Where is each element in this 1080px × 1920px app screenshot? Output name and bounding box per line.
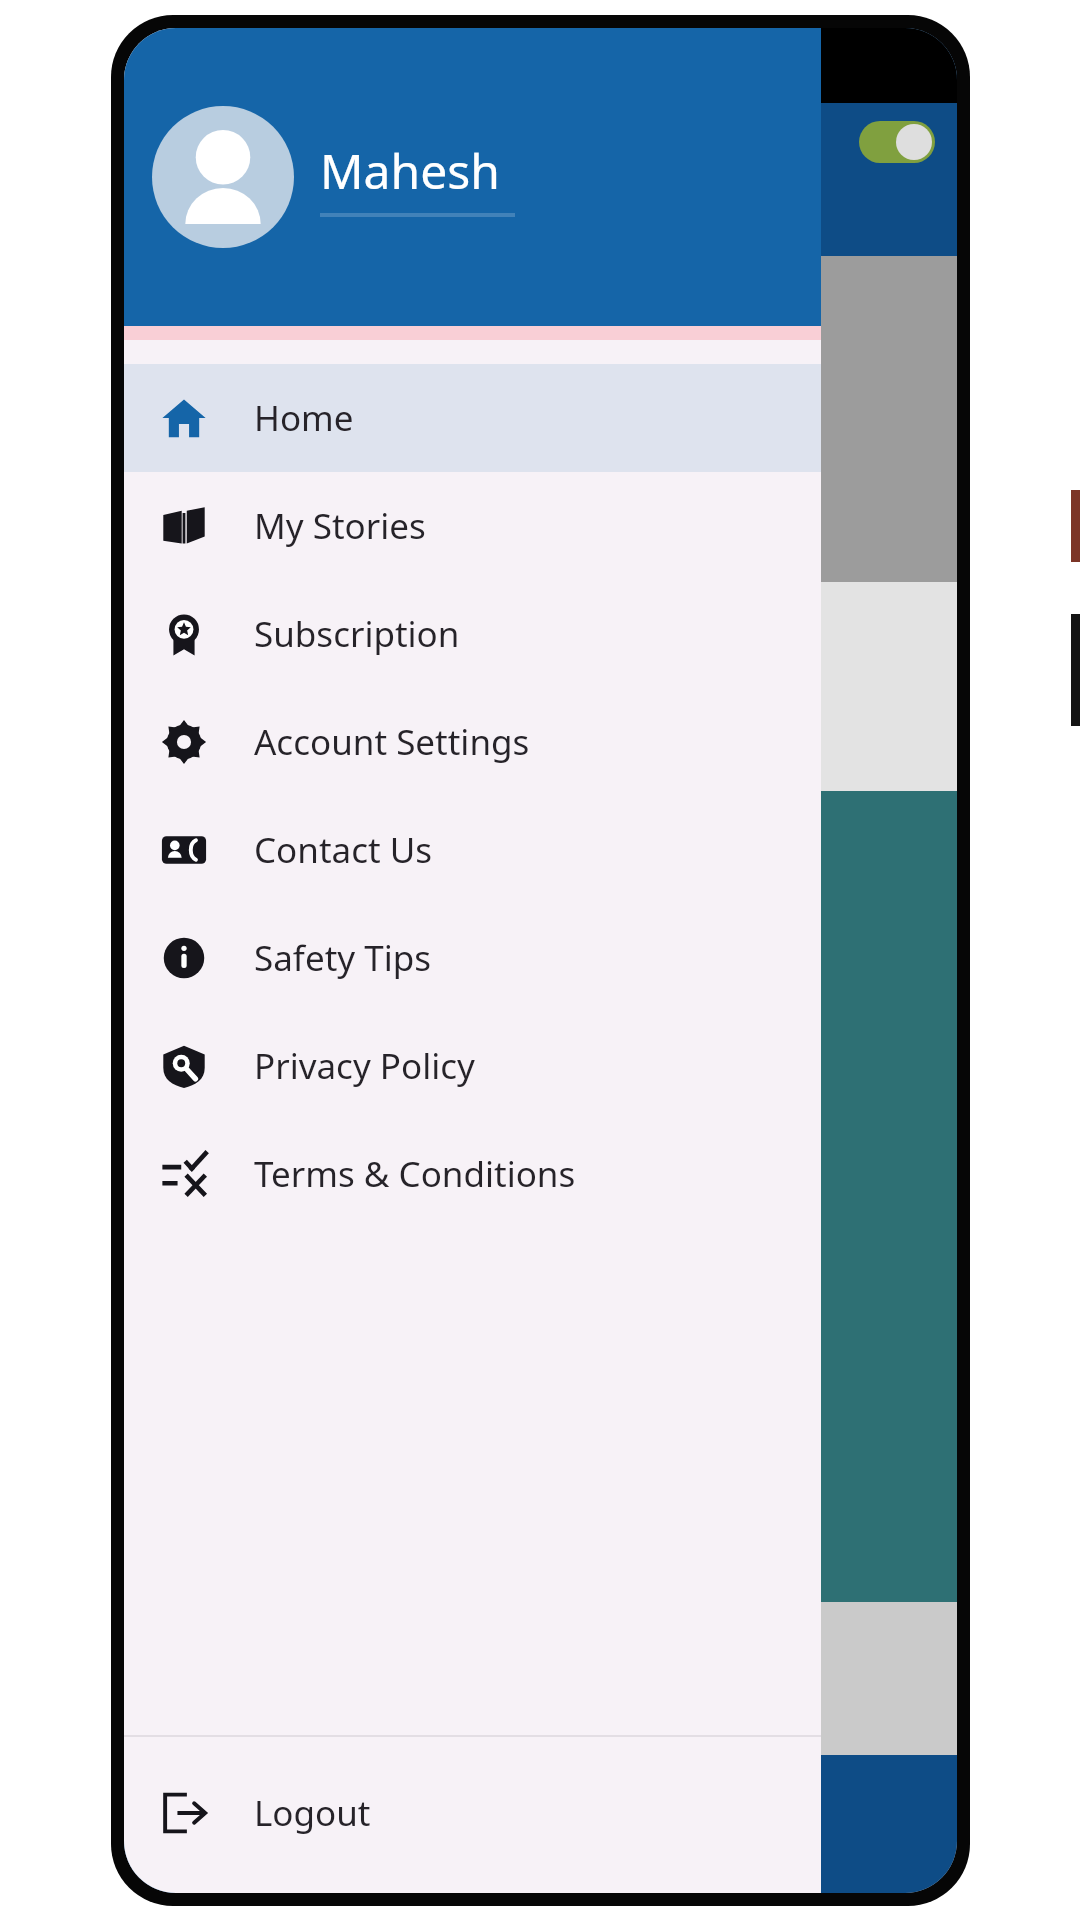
button[interactable]: Subscription (124, 580, 821, 688)
staticText: Logout (254, 1789, 371, 1837)
staticText: Safety Tips (254, 934, 431, 982)
button[interactable]: My Stories (124, 472, 821, 580)
staticText: Terms & Conditions (254, 1150, 576, 1198)
button[interactable]: Toggle (859, 121, 935, 163)
button[interactable]: Home (124, 364, 821, 472)
staticText: Account Settings (254, 718, 530, 766)
staticText: Mahesh (320, 138, 500, 203)
staticText: Contact Us (254, 826, 433, 874)
button[interactable]: Privacy Policy (124, 1012, 821, 1120)
button[interactable]: Contact Us (124, 796, 821, 904)
button[interactable]: Logout (124, 1759, 821, 1867)
button[interactable]: Account Settings (124, 688, 821, 796)
staticText: Home (254, 394, 354, 442)
staticText: Privacy Policy (254, 1042, 475, 1090)
button[interactable]: Safety Tips (124, 904, 821, 1012)
staticText: My Stories (254, 502, 426, 550)
button[interactable]: Terms & Conditions (124, 1120, 821, 1228)
staticText: Subscription (254, 610, 460, 658)
